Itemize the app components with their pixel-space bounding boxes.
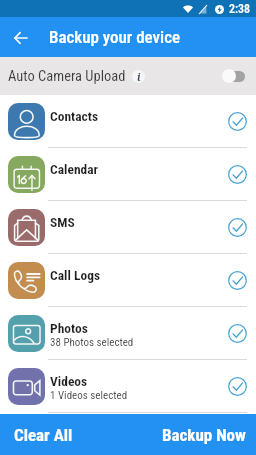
staticText: i: [137, 70, 141, 83]
staticText: Calendar: [50, 161, 99, 177]
button[interactable]: Call Logs: [0, 254, 256, 307]
button[interactable]: Info: [132, 70, 145, 83]
button[interactable]: Photos: [0, 307, 256, 360]
staticText: 38 Photos selected: [50, 336, 134, 349]
button[interactable]: Auto Camera Upload toggle: [222, 69, 245, 83]
staticText: SMS: [50, 214, 75, 230]
staticText: Clear All: [14, 425, 73, 445]
staticText: 1 Videos selected: [50, 389, 128, 402]
button[interactable]: Back: [8, 25, 33, 50]
button[interactable]: Calendar: [0, 148, 256, 201]
button[interactable]: Videos: [0, 360, 256, 413]
staticText: Backup your device: [49, 27, 181, 47]
button[interactable]: Clear All: [0, 414, 128, 455]
button[interactable]: Backup Now: [128, 414, 256, 455]
staticText: Photos: [50, 320, 88, 336]
button[interactable]: Auto Camera Upload: [0, 57, 256, 95]
button[interactable]: Call Logs selected: [224, 268, 250, 294]
staticText: Videos: [50, 373, 88, 389]
button[interactable]: SMS: [0, 201, 256, 254]
button[interactable]: Contacts selected: [224, 109, 250, 135]
staticText: Call Logs: [50, 267, 101, 283]
button[interactable]: Videos selected: [224, 374, 250, 400]
button[interactable]: Photos selected: [224, 321, 250, 347]
staticText: 2:38: [229, 2, 251, 16]
button[interactable]: SMS selected: [224, 215, 250, 241]
staticText: Backup Now: [162, 425, 246, 445]
button[interactable]: Contacts: [0, 95, 256, 148]
staticText: Contacts: [50, 108, 99, 124]
staticText: Auto Camera Upload: [8, 68, 126, 85]
button[interactable]: Calendar selected: [224, 162, 250, 188]
